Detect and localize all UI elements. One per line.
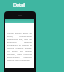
staticText: Lorem ipsum dolor sit amet, consectetur … [7,32,32,62]
button[interactable] [5,19,34,23]
staticText: Detail [13,1,25,8]
